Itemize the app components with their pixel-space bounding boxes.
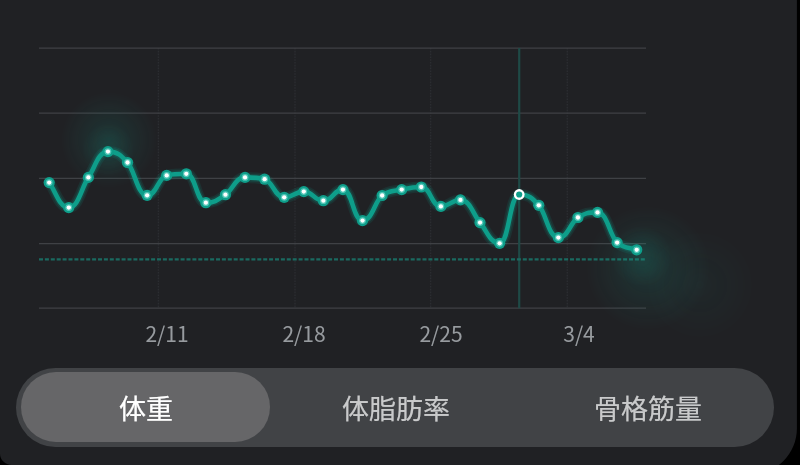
button[interactable]: 骨格筋量 bbox=[521, 372, 774, 442]
staticText: 骨格筋量 bbox=[594, 388, 702, 427]
staticText: 2/25 bbox=[391, 318, 491, 348]
button[interactable]: 体重 bbox=[21, 372, 270, 442]
staticText: 2/11 bbox=[117, 318, 217, 348]
staticText: 2/18 bbox=[254, 318, 354, 348]
button[interactable]: 体脂肪率 bbox=[271, 372, 521, 442]
staticText: 3/4 bbox=[529, 318, 629, 348]
staticText: 体脂肪率 bbox=[342, 388, 450, 427]
staticText: 体重 bbox=[119, 388, 173, 427]
